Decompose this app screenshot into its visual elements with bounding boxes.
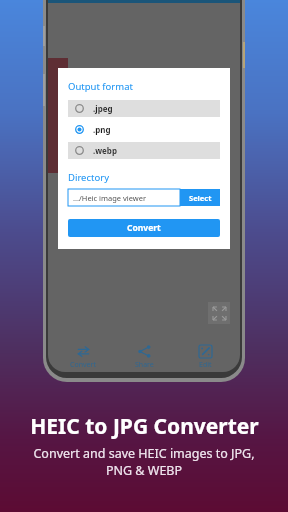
staticText: Convert bbox=[70, 360, 96, 370]
button[interactable]: Share bbox=[118, 345, 170, 370]
button[interactable]: Convert bbox=[57, 345, 109, 370]
button[interactable]: Fullscreen bbox=[208, 302, 230, 324]
staticText: Share bbox=[135, 360, 154, 370]
button[interactable]: Convert bbox=[68, 219, 220, 237]
staticText: Convert bbox=[127, 222, 161, 234]
staticText: Select bbox=[189, 193, 212, 203]
button[interactable]: .../Heic image viewer bbox=[68, 189, 180, 206]
staticText: .webp bbox=[93, 145, 117, 156]
staticText: Directory bbox=[68, 171, 109, 184]
button[interactable]: .png bbox=[68, 121, 220, 138]
button[interactable]: .webp bbox=[68, 142, 220, 159]
staticText: .jpeg bbox=[93, 103, 113, 114]
staticText: Convert and save HEIC images to JPG, PNG… bbox=[33, 445, 255, 478]
staticText: .../Heic image viewer bbox=[73, 193, 147, 203]
button[interactable]: .jpeg bbox=[68, 100, 220, 117]
staticText: Edit bbox=[199, 360, 212, 370]
staticText: Output format bbox=[68, 80, 133, 93]
staticText: .png bbox=[93, 124, 111, 135]
staticText: HEIC to JPG Converter bbox=[30, 412, 259, 441]
button[interactable]: Select bbox=[180, 189, 220, 206]
button[interactable]: Edit bbox=[179, 345, 231, 370]
